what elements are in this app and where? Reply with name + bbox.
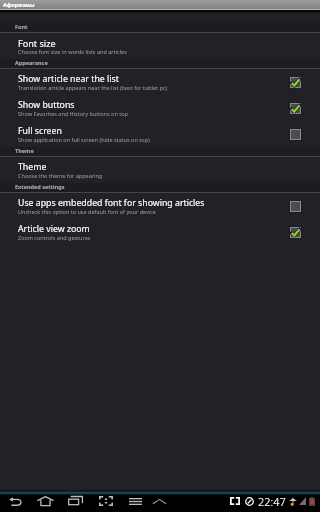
staticText: Font size [18,37,56,49]
staticText: Choose font size in words lists and arti… [18,48,127,55]
staticText: Use apps embedded font for showing artic… [18,197,205,209]
button[interactable]: Show buttons [275,95,315,121]
button[interactable]: Article view zoom [0,219,320,245]
staticText: Article view zoom [18,223,90,235]
button[interactable]: Show article near the list [275,69,315,95]
button[interactable]: Silent mode [244,496,254,506]
button[interactable]: Use apps embedded font for showing artic… [0,193,320,219]
button[interactable]: Menu [125,490,146,512]
button[interactable]: Full screen [275,121,315,147]
button[interactable]: Back [5,490,26,512]
staticText: Font [15,23,28,30]
staticText: Extended settings [15,183,65,190]
staticText: Appearance [15,59,48,66]
staticText: Theme [18,161,47,173]
button[interactable]: Article view zoom [275,219,315,245]
button[interactable]: Expand [149,490,170,512]
button[interactable]: Full screen [0,121,320,147]
staticText: Show Favorites and History buttons on to… [18,110,128,117]
staticText: Full screen [18,125,62,137]
staticText: Show application on full screen (hide st… [18,136,150,143]
staticText: Translation article appears near the lis… [18,84,168,91]
button[interactable]: Recent apps [65,490,86,512]
button[interactable]: Home [35,490,56,512]
staticText: Zoom controls and gestures [18,234,91,241]
staticText: Choose the theme for appearing [18,172,103,179]
button[interactable]: Font size [0,33,320,59]
button[interactable]: Screenshot [95,490,116,512]
staticText: 22:47 [258,494,286,509]
staticText: Theme [15,147,34,154]
staticText: Uncheck this option to use default font … [18,208,156,215]
button[interactable]: Show article near the list [0,69,320,95]
staticText: Show article near the list [18,73,119,85]
button[interactable]: Fullscreen [230,496,240,506]
button[interactable]: Use apps embedded font for showing artic… [275,193,315,219]
staticText: Афоризмы [3,1,35,9]
button[interactable]: Show buttons [0,95,320,121]
staticText: Show buttons [18,99,75,111]
button[interactable]: Theme [0,157,320,183]
